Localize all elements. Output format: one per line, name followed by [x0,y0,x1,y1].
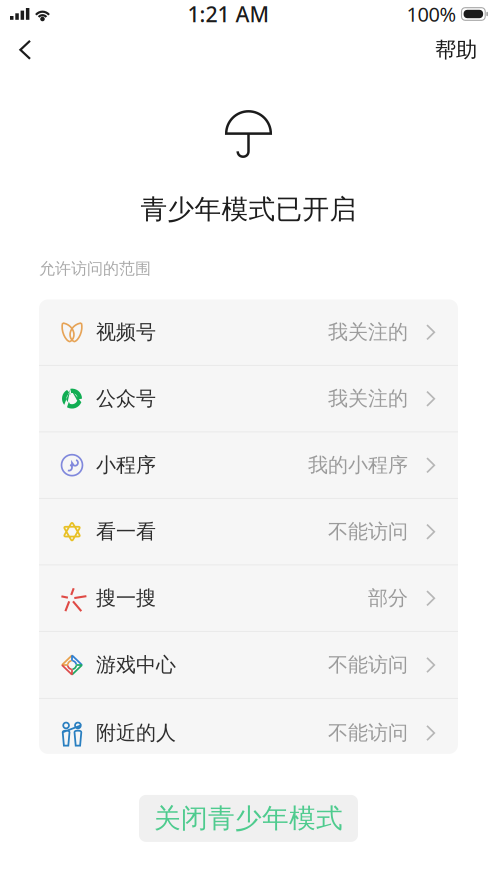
button[interactable]: 看一看 [39,499,458,565]
staticText: 1:21 AM [187,0,269,28]
staticText: 视频号 [96,320,156,344]
button[interactable]: 关闭青少年模式 [139,795,358,842]
staticText: 小程序 [96,453,156,477]
button[interactable]: 帮助 [417,28,497,72]
button[interactable]: 搜一搜 [39,565,458,632]
staticText: 不能访问 [328,721,408,745]
button[interactable]: 小程序 [39,432,458,499]
staticText: 不能访问 [328,653,408,677]
button[interactable]: 视频号 [39,299,458,366]
staticText: 我的小程序 [308,453,408,477]
staticText: 看一看 [96,519,156,544]
staticText: 100% [406,1,456,27]
button[interactable]: 公众号 [39,366,458,432]
staticText: 附近的人 [96,721,176,745]
staticText: 我关注的 [328,320,408,344]
staticText: 关闭青少年模式 [154,802,343,835]
staticText: 青少年模式已开启 [140,193,356,226]
staticText: 不能访问 [328,519,408,544]
staticText: 帮助 [435,37,477,63]
staticText: 公众号 [96,386,156,411]
button[interactable]: 附近的人 [39,699,458,754]
staticText: 我关注的 [328,386,408,411]
button[interactable]: 游戏中心 [39,632,458,699]
staticText: 搜一搜 [96,586,156,610]
staticText: 游戏中心 [96,653,176,677]
button[interactable]: 返回 [5,28,45,72]
staticText: 部分 [368,586,408,610]
staticText: 允许访问的范围 [39,259,151,278]
